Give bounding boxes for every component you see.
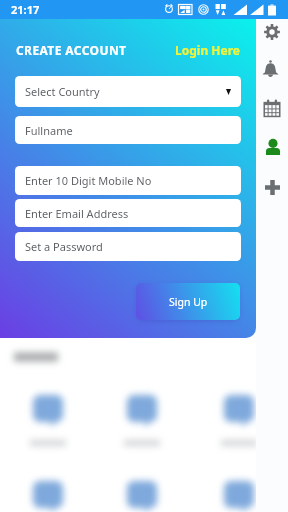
staticText: Sign Up [169, 295, 208, 309]
staticText: Enter 10 Digit Mobile No [25, 173, 152, 188]
button[interactable]: Calendar [263, 99, 281, 117]
button[interactable]: Enter 10 Digit Mobile No [15, 166, 241, 195]
staticText: Set a Password [25, 239, 103, 254]
button[interactable]: Notifications [262, 60, 279, 77]
staticText: Fullname [25, 123, 73, 138]
button[interactable]: Login Here [175, 42, 240, 58]
button[interactable]: Enter Email Address [15, 199, 241, 227]
staticText: Enter Email Address [25, 206, 129, 221]
staticText: 21:17 [11, 2, 40, 17]
staticText: Login Here [175, 42, 240, 58]
button[interactable]: Select Country [15, 76, 241, 107]
button[interactable]: Fullname [15, 116, 241, 144]
button[interactable]: Add [265, 180, 280, 195]
staticText: Select Country [25, 84, 100, 99]
button[interactable]: Settings [264, 24, 280, 40]
button[interactable]: Sign Up [136, 283, 240, 320]
staticText: CREATE ACCOUNT [16, 42, 127, 58]
button[interactable]: Set a Password [15, 232, 241, 261]
button[interactable]: Profile [265, 139, 281, 155]
